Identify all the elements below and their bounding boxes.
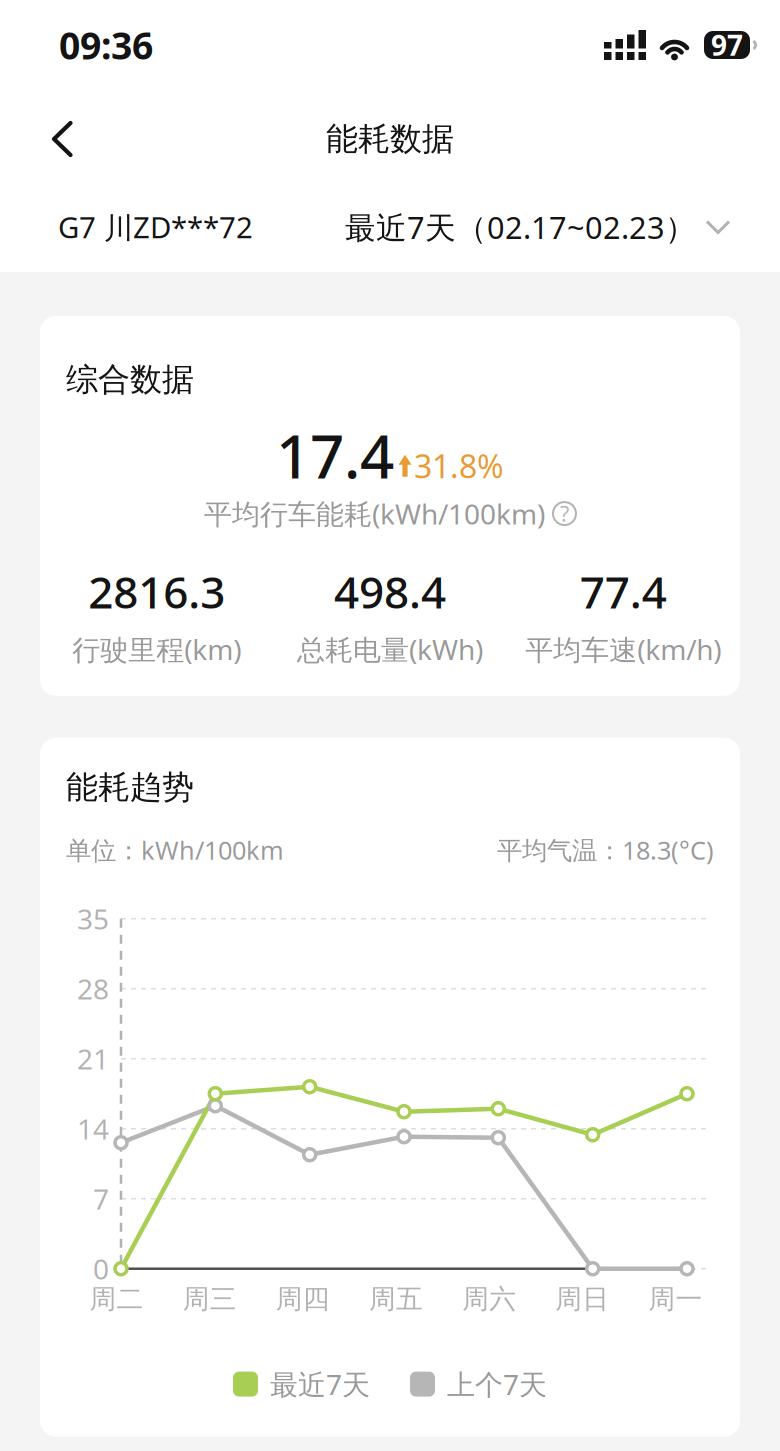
staticText: 498.4	[334, 562, 446, 621]
button[interactable]: 最近7天（02.17~02.23）	[345, 207, 732, 247]
staticText: 单位：kWh/100km	[66, 833, 284, 867]
staticText: 周日	[555, 1283, 609, 1315]
staticText: 综合数据	[66, 360, 194, 399]
staticText: 7	[93, 1180, 109, 1217]
staticText: 上个7天	[447, 1365, 547, 1403]
staticText: 最近7天（02.17~02.23）	[345, 207, 696, 247]
staticText: 31.8%	[414, 444, 504, 487]
staticText: 能耗数据	[326, 119, 454, 159]
staticText: 17.4	[276, 415, 394, 495]
staticText: 平均车速(km/h)	[525, 631, 721, 668]
staticText: 周三	[183, 1283, 237, 1315]
staticText: 14	[77, 1110, 109, 1147]
staticText: 77.4	[580, 562, 667, 621]
staticText: 最近7天	[270, 1365, 370, 1403]
staticText: 0	[93, 1250, 109, 1287]
staticText: 2816.3	[88, 562, 225, 621]
staticText: 35	[77, 900, 109, 937]
staticText: G7 川ZD***72	[58, 207, 253, 246]
staticText: 总耗电量(kWh)	[297, 631, 483, 668]
staticText: 能耗趋势	[66, 768, 194, 807]
staticText: 平均行车能耗(kWh/100km)	[204, 495, 545, 532]
staticText: 09:36	[59, 20, 153, 70]
staticText: 28	[77, 970, 109, 1007]
staticText: 周二	[90, 1283, 144, 1315]
staticText: 97	[711, 26, 743, 64]
staticText: 周五	[369, 1283, 423, 1315]
staticText: 行驶里程(km)	[72, 631, 241, 668]
staticText: ?	[560, 499, 569, 528]
button[interactable]: Back	[0, 96, 104, 182]
staticText: 周四	[276, 1283, 330, 1315]
staticText: 平均气温：18.3(°C)	[497, 833, 714, 867]
staticText: 周一	[648, 1283, 702, 1315]
staticText: 21	[77, 1040, 109, 1077]
staticText: 周六	[462, 1283, 516, 1315]
